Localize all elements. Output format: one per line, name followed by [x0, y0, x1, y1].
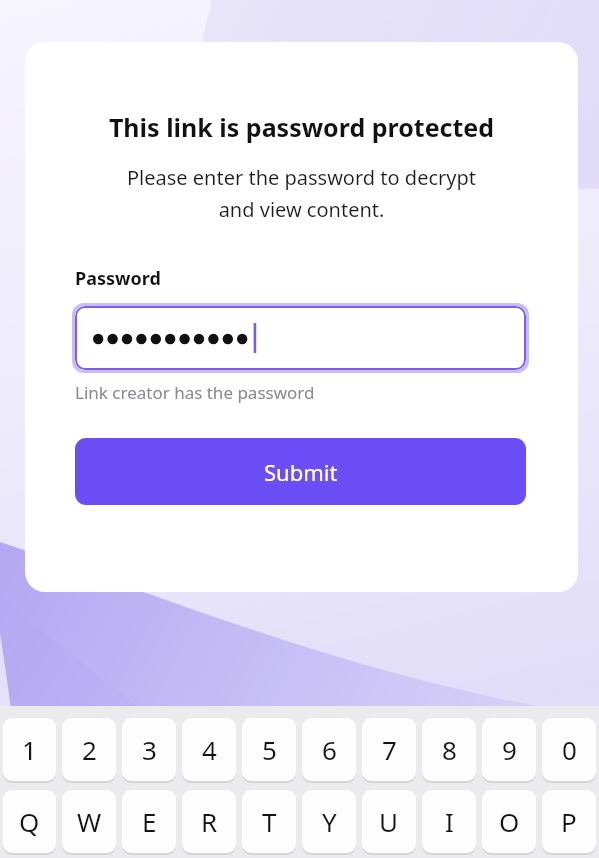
button[interactable]: Y	[302, 790, 356, 855]
button[interactable]: E	[122, 790, 176, 855]
staticText: 5	[262, 732, 277, 767]
button[interactable]: 4	[182, 718, 236, 783]
staticText: 2	[82, 732, 97, 767]
button[interactable]: 3	[122, 718, 176, 783]
staticText: 3	[142, 732, 157, 767]
staticText: Link creator has the password	[75, 381, 315, 404]
button[interactable]: R	[182, 790, 236, 855]
button[interactable]: 1	[3, 718, 56, 783]
staticText: This link is password protected	[45, 110, 558, 144]
staticText: Q	[19, 804, 40, 839]
staticText: 4	[202, 732, 217, 767]
button[interactable]: 9	[482, 718, 536, 783]
staticText: O	[499, 804, 520, 839]
staticText: R	[201, 804, 218, 839]
staticText: 0	[562, 732, 577, 767]
staticText: T	[262, 804, 277, 839]
button[interactable]: 6	[302, 718, 356, 783]
staticText: 7	[382, 732, 397, 767]
staticText: 9	[502, 732, 517, 767]
button[interactable]: 0	[542, 718, 596, 783]
button[interactable]: 8	[422, 718, 476, 783]
button[interactable]: P	[542, 790, 596, 855]
staticText: Y	[322, 804, 337, 839]
button[interactable]: Submit	[75, 438, 526, 505]
staticText: 6	[322, 732, 337, 767]
button[interactable]: T	[242, 790, 296, 855]
button[interactable]: U	[362, 790, 416, 855]
staticText: I	[445, 804, 454, 839]
button[interactable]: 2	[62, 718, 116, 783]
staticText: 8	[442, 732, 457, 767]
staticText: U	[379, 804, 399, 839]
button[interactable]: Q	[3, 790, 56, 855]
staticText: Please enter the password to decrypt and…	[61, 164, 542, 223]
staticText: Password	[75, 266, 161, 291]
button[interactable]	[75, 306, 526, 370]
staticText: E	[142, 804, 157, 839]
staticText: P	[561, 804, 577, 839]
staticText: W	[77, 804, 102, 839]
button[interactable]: I	[422, 790, 476, 855]
staticText: Submit	[264, 457, 338, 487]
button[interactable]: 5	[242, 718, 296, 783]
staticText: 1	[22, 732, 37, 767]
button[interactable]: O	[482, 790, 536, 855]
button[interactable]: 7	[362, 718, 416, 783]
button[interactable]: W	[62, 790, 116, 855]
